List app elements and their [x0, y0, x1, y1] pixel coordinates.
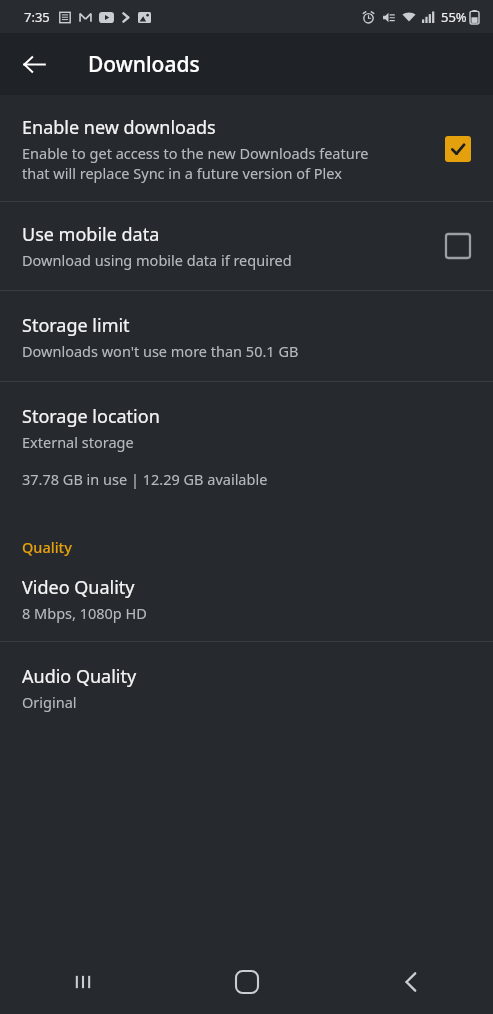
staticText: 7:35 — [24, 8, 50, 26]
staticText: Download using mobile data if required — [22, 250, 292, 270]
staticText: 8 Mbps, 1080p HD — [22, 603, 147, 623]
staticText: Use mobile data — [22, 222, 160, 247]
button[interactable]: Use mobile data — [0, 202, 493, 290]
staticText: Storage location — [22, 404, 160, 429]
staticText: Enable to get access to the new Download… — [22, 143, 369, 183]
button[interactable]: Home — [165, 950, 329, 1014]
staticText: Audio Quality — [22, 664, 137, 689]
button[interactable]: Back — [10, 40, 58, 88]
staticText: Downloads won't use more than 50.1 GB — [22, 341, 299, 361]
staticText: Original — [22, 692, 77, 712]
staticText: Video Quality — [22, 575, 135, 600]
other: Use mobile data, unchecked — [445, 233, 471, 259]
button[interactable]: Video Quality — [0, 561, 493, 641]
staticText: Storage limit — [22, 313, 130, 338]
staticText: Downloads — [88, 50, 200, 79]
staticText: 37.78 GB in use | 12.29 GB available — [22, 469, 268, 489]
button[interactable]: Enable new downloads — [0, 95, 493, 201]
button[interactable]: Storage limit — [0, 291, 493, 381]
staticText: External storage — [22, 432, 134, 452]
button[interactable]: Audio Quality — [0, 642, 493, 732]
other: Enable new downloads, checked — [445, 136, 471, 162]
staticText: 55% — [441, 8, 467, 26]
button[interactable]: Recent apps — [0, 950, 165, 1014]
button[interactable]: Back — [329, 950, 493, 1014]
button[interactable]: Storage location — [0, 382, 493, 505]
staticText: Enable new downloads — [22, 115, 216, 140]
staticText: Quality — [22, 537, 72, 557]
